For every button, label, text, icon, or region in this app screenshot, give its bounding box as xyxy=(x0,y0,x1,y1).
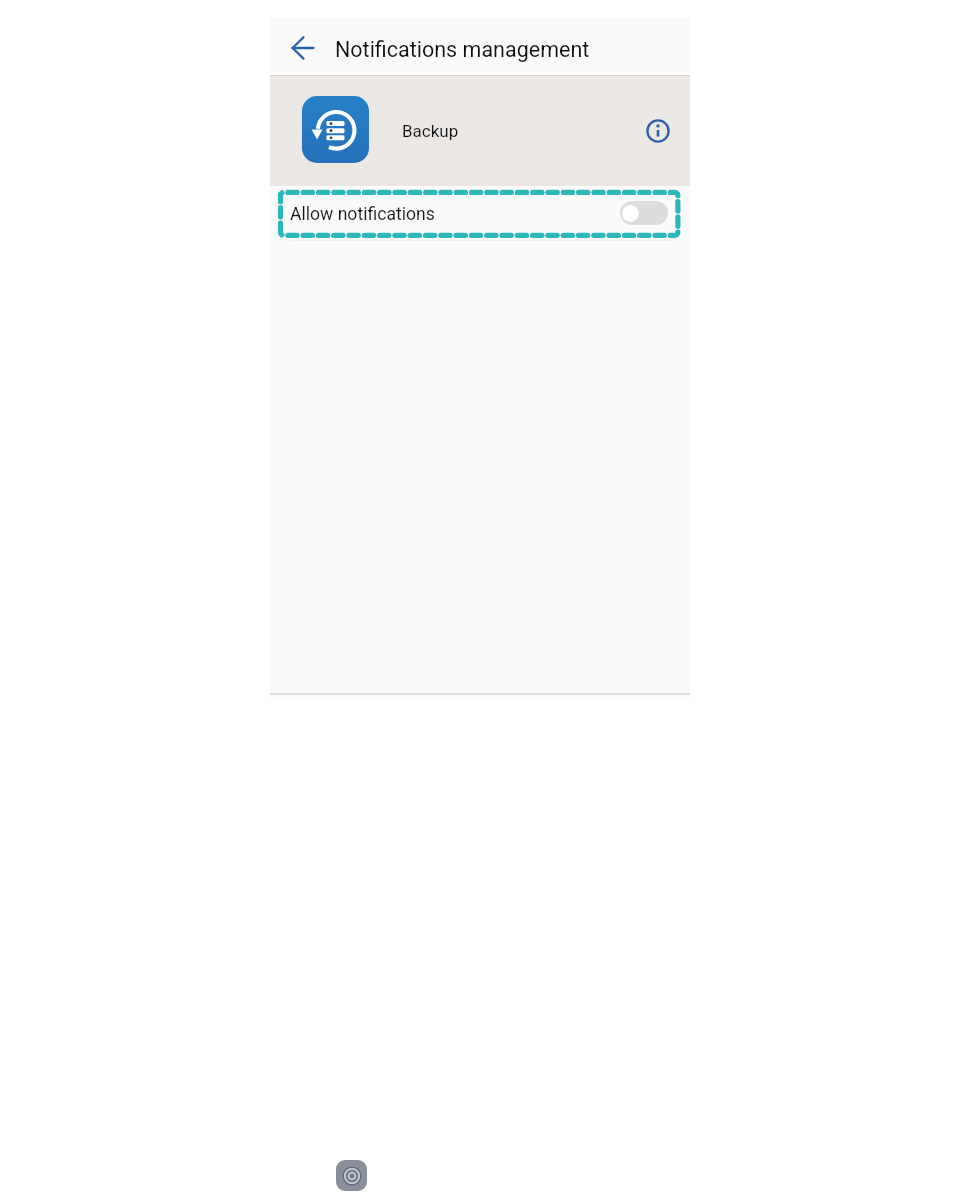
staticText: Backup xyxy=(402,121,459,141)
button[interactable]: App badge xyxy=(336,1160,367,1191)
other: Backup app icon xyxy=(302,96,369,163)
staticText: Notifications management xyxy=(335,37,590,62)
button[interactable]: Info xyxy=(642,115,674,147)
button[interactable]: Allow notifications toggle, off xyxy=(620,201,668,225)
button[interactable]: Allow notifications xyxy=(270,186,690,238)
staticText: Allow notifications xyxy=(290,204,435,225)
button[interactable]: Back xyxy=(284,29,322,67)
